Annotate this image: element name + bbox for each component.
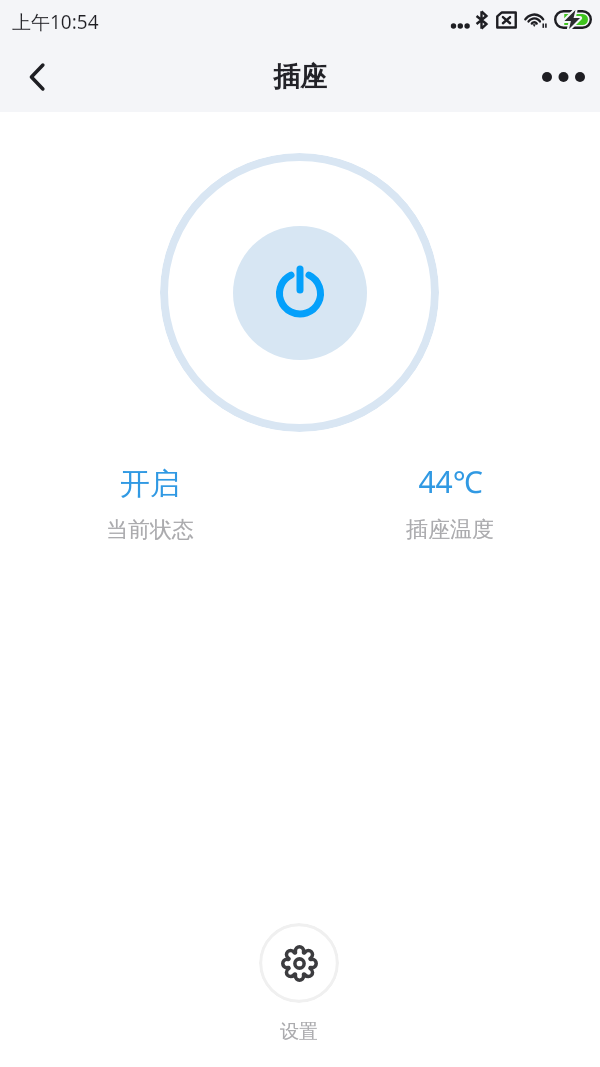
staticText: 上午10:54 (12, 9, 99, 35)
staticText: 插座温度 (406, 516, 494, 544)
staticText: 开启 (120, 465, 180, 503)
staticText: 44℃ (418, 461, 483, 502)
button[interactable]: Power toggle (160, 153, 439, 432)
staticText: 当前状态 (106, 516, 194, 544)
staticText: 设置 (280, 1020, 318, 1044)
staticText: 插座 (273, 60, 327, 94)
button[interactable]: Settings (259, 923, 339, 1003)
button[interactable]: More options (535, 48, 592, 105)
button[interactable]: Back (8, 48, 65, 105)
